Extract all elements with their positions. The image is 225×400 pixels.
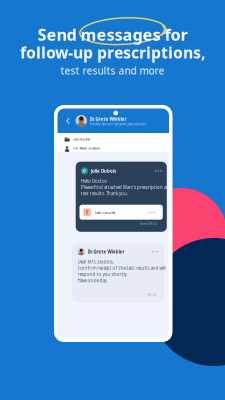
- staticText: Sent 09:10: [140, 222, 157, 226]
- button[interactable]: Lab results: [76, 162, 167, 232]
- button[interactable]: Back: [57, 108, 169, 133]
- staticText: Lab results: [94, 210, 115, 215]
- staticText: JD: [83, 168, 87, 173]
- staticText: Please find attached Marc's prescription…: [81, 184, 172, 190]
- staticText: Julie Dubois: [91, 168, 116, 174]
- staticText: I confirm receipt of the test results an…: [77, 265, 165, 271]
- staticText: test results. Thank you.: [81, 190, 128, 196]
- staticText: For Marc Dubois: [72, 146, 100, 151]
- staticText: Dr. Grete Winkler: [87, 249, 124, 255]
- staticText: Dear Mrs. Dubois,: [77, 259, 113, 265]
- staticText: respond to you shortly.: [77, 271, 127, 277]
- staticText: test results and more: [60, 64, 164, 77]
- staticText: follow-up prescriptions,: [20, 42, 205, 63]
- staticText: Dr. Grete Winkler: [89, 116, 126, 122]
- staticText: Have a nice day.: [77, 277, 107, 283]
- staticText: Send messages for: [37, 24, 187, 45]
- staticText: 18:12: [147, 292, 156, 297]
- staticText: Hello Doctor,: [81, 178, 107, 184]
- staticText: Lab results: [72, 137, 90, 142]
- staticText: Family doctor / general practitioner: [89, 121, 145, 126]
